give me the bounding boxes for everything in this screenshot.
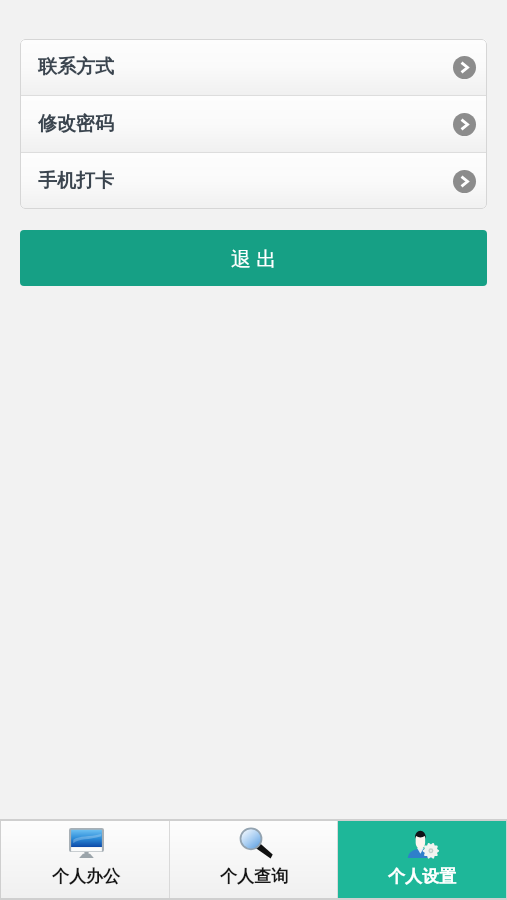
staticText: 联系方式 xyxy=(38,55,114,79)
button[interactable]: 退 出 xyxy=(20,230,487,286)
other: 个人查询 xyxy=(237,828,272,858)
staticText: 退 出 xyxy=(231,245,277,272)
staticText: 个人办公 xyxy=(52,866,120,887)
staticText: 修改密码 xyxy=(38,112,114,136)
other: 个人设置 xyxy=(405,828,440,858)
other: 查看 xyxy=(453,170,476,193)
button[interactable]: 修改密码 xyxy=(20,96,487,152)
staticText: 个人查询 xyxy=(220,866,288,887)
other: 查看 xyxy=(453,113,476,136)
staticText: 手机打卡 xyxy=(38,169,114,193)
other: 个人办公 xyxy=(69,828,104,858)
other: 查看 xyxy=(453,56,476,79)
button[interactable]: 个人查询 xyxy=(170,821,338,898)
button[interactable]: 手机打卡 xyxy=(20,153,487,209)
button[interactable]: 个人办公 xyxy=(1,821,170,898)
staticText: 个人设置 xyxy=(388,866,456,887)
button[interactable]: 联系方式 xyxy=(20,39,487,95)
button[interactable]: 个人设置 xyxy=(338,821,506,898)
